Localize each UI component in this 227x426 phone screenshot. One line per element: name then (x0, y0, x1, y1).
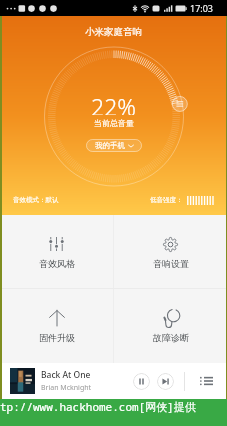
staticText: 低音强度： (150, 196, 183, 204)
button[interactable]: Playlist (185, 363, 227, 399)
button[interactable]: 故障诊断 (114, 289, 227, 363)
staticText: Back At One (41, 369, 91, 381)
staticText: 当前总音量 (94, 118, 134, 128)
button[interactable]: 固件升级 (0, 289, 113, 363)
button[interactable]: 我的手机 (86, 139, 142, 152)
button[interactable]: 音效风格 (0, 215, 113, 288)
staticText: 固件升级 (39, 332, 75, 343)
staticText: 故障诊断 (153, 332, 189, 343)
staticText: 音效模式：默认 (13, 196, 59, 204)
staticText: tp://www.hackhome.com[网侠]提供 (0, 399, 196, 414)
button[interactable]: Pause (133, 373, 150, 390)
staticText: 17:03 (190, 2, 214, 14)
button[interactable]: Next (157, 373, 174, 390)
staticText: Brian Mcknight (41, 383, 92, 393)
staticText: 小米家庭音响 (85, 26, 142, 38)
staticText: 我的手机 (95, 141, 125, 150)
staticText: 22% (91, 91, 136, 115)
button[interactable]: 音响设置 (114, 215, 227, 288)
staticText: 音响设置 (153, 258, 189, 269)
staticText: 音效风格 (39, 258, 75, 269)
